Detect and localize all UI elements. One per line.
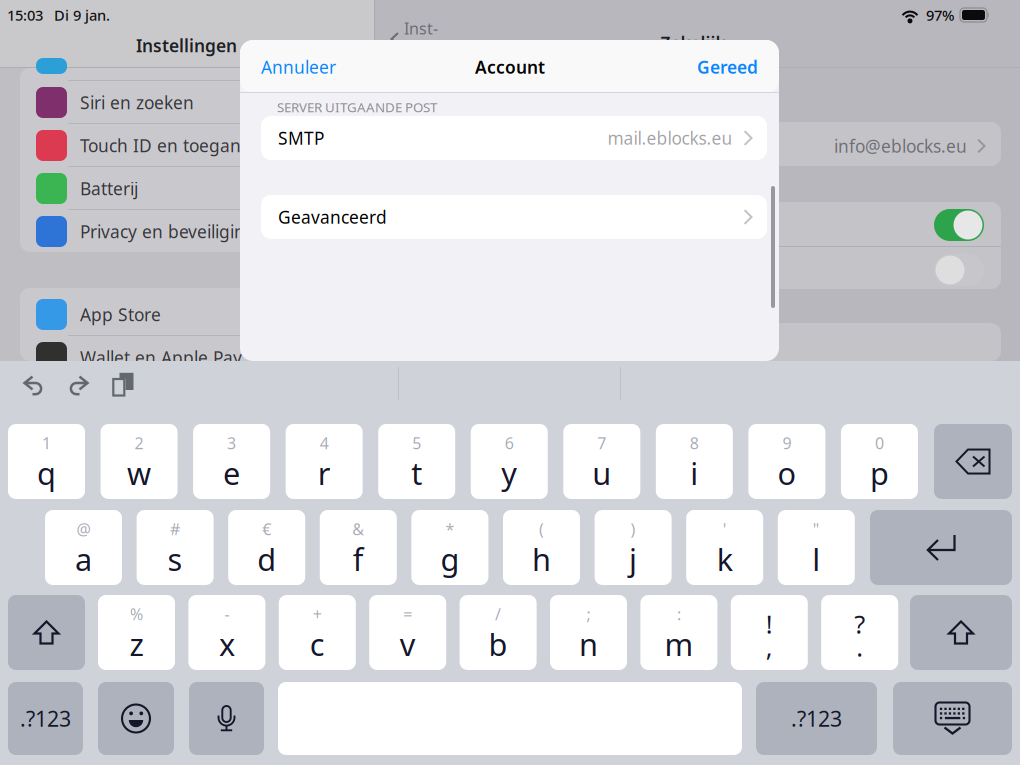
button[interactable]: % xyxy=(98,595,175,670)
button[interactable]: 1 xyxy=(8,424,85,499)
button[interactable]: Undo xyxy=(24,375,44,395)
button[interactable]: ) xyxy=(595,510,672,585)
button[interactable]: Delete xyxy=(934,424,1012,499)
staticText: q xyxy=(37,453,56,493)
button[interactable] xyxy=(870,510,1012,585)
staticText: h xyxy=(532,539,551,579)
staticText: ? xyxy=(854,607,865,641)
staticText: u xyxy=(592,453,611,493)
staticText: f xyxy=(353,539,364,579)
staticText: * xyxy=(445,518,454,540)
staticText: b xyxy=(489,624,508,664)
button[interactable]: € xyxy=(228,510,305,585)
staticText: / xyxy=(495,603,501,625)
button[interactable]: Touch ID en toegangscode xyxy=(20,124,348,167)
button[interactable]: Gereed xyxy=(697,55,758,78)
staticText: k xyxy=(717,539,733,579)
staticText: y xyxy=(501,453,517,493)
staticText: - xyxy=(224,603,229,625)
staticText: 7 xyxy=(597,432,606,454)
staticText: % xyxy=(130,603,143,625)
button[interactable]: ( xyxy=(503,510,580,585)
staticText: € xyxy=(262,518,271,540)
staticText: Instellingen xyxy=(136,34,237,57)
staticText: a xyxy=(75,539,92,579)
button[interactable]: 9 xyxy=(748,424,825,499)
staticText: s xyxy=(168,539,183,579)
button[interactable]: : xyxy=(640,595,717,670)
staticText: : xyxy=(677,603,681,625)
staticText: Touch ID en toegangscode xyxy=(80,134,299,157)
staticText: z xyxy=(129,624,143,664)
button[interactable]: & xyxy=(320,510,397,585)
staticText: ; xyxy=(586,603,590,625)
staticText: " xyxy=(813,518,820,540)
staticText: t xyxy=(411,453,422,493)
button[interactable] xyxy=(189,682,264,755)
button[interactable]: 4 xyxy=(286,424,363,499)
button[interactable]: App Store xyxy=(20,293,348,336)
button[interactable]: ? xyxy=(821,595,898,670)
button[interactable]: ! xyxy=(731,595,808,670)
staticText: 8 xyxy=(690,432,699,454)
button[interactable]: Redo xyxy=(68,375,88,395)
staticText: w xyxy=(127,453,151,493)
button[interactable]: Emoji xyxy=(98,682,174,755)
button[interactable]: * xyxy=(411,510,488,585)
staticText: , xyxy=(766,630,773,664)
button[interactable]: SMTP xyxy=(261,116,767,160)
button[interactable]: ; xyxy=(550,595,627,670)
button[interactable] xyxy=(893,682,1012,755)
button[interactable]: .?123 xyxy=(756,682,877,755)
staticText: & xyxy=(352,518,364,540)
button[interactable]: Shift xyxy=(8,595,85,670)
staticText: Di 9 jan. xyxy=(54,5,110,25)
staticText: info@eblocks.eu xyxy=(834,134,967,157)
button[interactable]: Annuleer xyxy=(261,55,336,78)
button[interactable]: - xyxy=(188,595,265,670)
staticText: n xyxy=(579,624,598,664)
button[interactable]: 8 xyxy=(656,424,733,499)
button[interactable]: / xyxy=(460,595,537,670)
button[interactable]: = xyxy=(369,595,446,670)
staticText: g xyxy=(440,539,459,579)
button[interactable]: 2 xyxy=(101,424,178,499)
button[interactable]: Batterij xyxy=(20,167,348,210)
staticText: v xyxy=(400,624,416,664)
button[interactable]: + xyxy=(279,595,356,670)
button[interactable]: Hide keyboard xyxy=(893,682,1012,755)
button[interactable]: Return xyxy=(870,510,1012,585)
staticText: .?123 xyxy=(791,704,842,733)
button[interactable] xyxy=(934,424,1012,499)
button[interactable]: 3 xyxy=(193,424,270,499)
staticText: l xyxy=(812,539,820,579)
staticText: 6 xyxy=(505,432,514,454)
button[interactable]: 5 xyxy=(378,424,455,499)
button[interactable]: # xyxy=(137,510,214,585)
button[interactable]: Shift xyxy=(910,595,1012,670)
button[interactable]: Siri en zoeken xyxy=(20,81,348,124)
button[interactable]: 6 xyxy=(471,424,548,499)
staticText: d xyxy=(257,539,276,579)
staticText: 3 xyxy=(227,432,236,454)
button[interactable]: ' xyxy=(686,510,763,585)
button[interactable]: @ xyxy=(45,510,122,585)
button[interactable]: .?123 xyxy=(8,682,83,755)
button[interactable]: Privacy en beveiliging xyxy=(20,210,348,253)
staticText: c xyxy=(310,624,325,664)
button[interactable]: " xyxy=(778,510,855,585)
button[interactable] xyxy=(910,595,1012,670)
button[interactable]: Paste xyxy=(112,372,135,397)
button[interactable]: Dictate xyxy=(189,682,264,755)
button[interactable] xyxy=(8,595,85,670)
staticText: + xyxy=(313,603,322,625)
button[interactable]: 7 xyxy=(563,424,640,499)
button[interactable]: Wallet en Apple Pay xyxy=(20,336,348,379)
staticText: Batterij xyxy=(80,177,138,200)
staticText: App Store xyxy=(80,303,161,326)
button[interactable]: 0 xyxy=(841,424,918,499)
button[interactable]: Geavanceerd xyxy=(261,195,767,239)
staticText: 5 xyxy=(412,432,421,454)
button[interactable] xyxy=(98,682,174,755)
